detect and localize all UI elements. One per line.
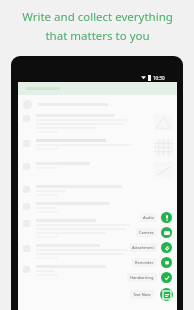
- button[interactable]: [18, 136, 177, 159]
- staticText: Text Note: [133, 292, 151, 297]
- other: Attachment: [161, 242, 172, 253]
- button[interactable]: Handwriting: [127, 272, 172, 283]
- button[interactable]: Text Note: [130, 286, 175, 303]
- button[interactable]: [18, 241, 177, 262]
- staticText: Attachment: [132, 245, 154, 250]
- staticText: Write and collect everything: [22, 9, 173, 25]
- button[interactable]: [18, 182, 177, 199]
- other: Handwriting: [161, 272, 172, 283]
- button[interactable]: Attachment: [129, 242, 172, 253]
- button[interactable]: [18, 216, 177, 241]
- other: Camera: [161, 227, 172, 238]
- button[interactable]: [18, 262, 177, 279]
- button[interactable]: Camera: [136, 227, 172, 238]
- staticText: Handwriting: [130, 275, 154, 280]
- staticText: Camera: [139, 230, 154, 235]
- other: Audio: [161, 212, 172, 223]
- button[interactable]: Reminder: [132, 257, 172, 268]
- button[interactable]: [18, 111, 177, 136]
- staticText: Audio: [143, 215, 154, 220]
- button[interactable]: Audio: [140, 212, 172, 223]
- staticText: Reminder: [135, 260, 154, 265]
- other: Text Note: [160, 288, 173, 301]
- button[interactable]: [18, 199, 177, 216]
- staticText: 10:30: [153, 75, 165, 81]
- other: Reminder: [161, 257, 172, 268]
- button[interactable]: [18, 159, 177, 182]
- staticText: that matters to you: [45, 28, 150, 44]
